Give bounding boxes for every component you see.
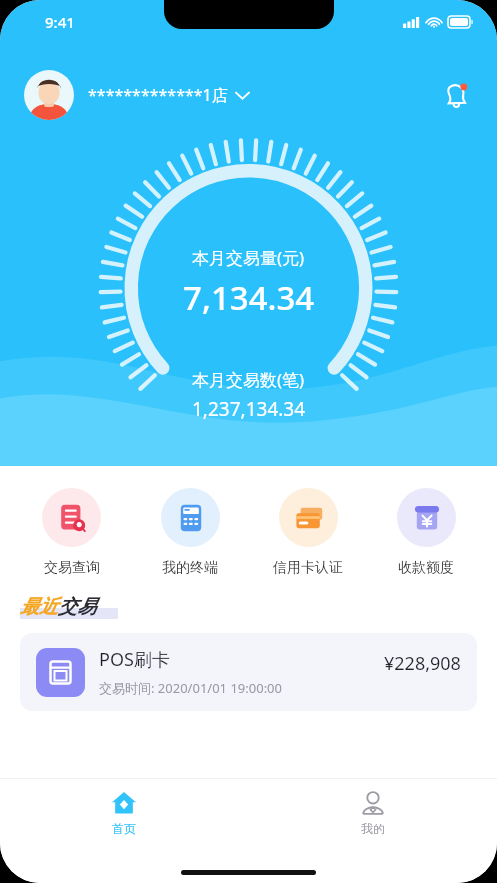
button[interactable]: 首页 [0, 784, 248, 842]
staticText: 本月交易量(元) [192, 246, 305, 269]
button[interactable]: 我的终端 [131, 484, 249, 581]
staticText: 首页 [112, 821, 136, 836]
staticText: 9:41 [45, 12, 75, 32]
staticText: 我的 [361, 821, 385, 836]
button[interactable]: *************1店 [88, 84, 437, 106]
staticText: 最近 [20, 595, 58, 619]
staticText: POS刷卡 [99, 647, 170, 672]
button[interactable]: 我的 [248, 784, 497, 842]
button[interactable]: 交易查询 [12, 484, 131, 581]
button[interactable]: 信用卡认证 [249, 484, 367, 581]
button[interactable]: 收款额度 [367, 484, 485, 581]
staticText: *************1店 [88, 84, 228, 106]
staticText: 7,134.34 [183, 275, 315, 320]
staticText: 交易 [58, 595, 96, 619]
button[interactable]: Profile [24, 70, 74, 120]
staticText: 收款额度 [398, 559, 454, 577]
staticText: 交易查询 [44, 559, 100, 577]
button[interactable]: Notifications [437, 76, 475, 114]
staticText: 交易时间: 2020/01/01 19:00:00 [99, 679, 282, 697]
staticText: 本月交易数(笔) [192, 368, 305, 391]
staticText: 我的终端 [162, 559, 218, 577]
button[interactable]: POS刷卡 [20, 633, 477, 711]
staticText: 1,237,134.34 [192, 396, 306, 422]
staticText: 信用卡认证 [273, 559, 343, 577]
staticText: ¥228,908 [384, 651, 461, 676]
